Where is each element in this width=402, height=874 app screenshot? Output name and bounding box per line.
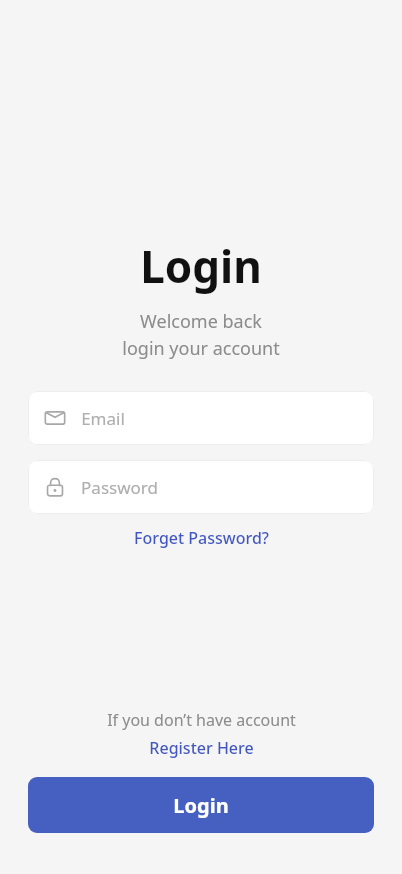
staticText: Login bbox=[140, 236, 262, 296]
staticText: Welcome back bbox=[140, 309, 262, 334]
button[interactable]: Password bbox=[28, 460, 374, 514]
button[interactable]: Login bbox=[28, 777, 374, 833]
staticText: Password bbox=[81, 476, 158, 499]
staticText: If you don’t have account bbox=[107, 709, 296, 731]
staticText: Email bbox=[81, 407, 125, 430]
staticText: Forget Password? bbox=[134, 527, 269, 549]
staticText: Register Here bbox=[149, 737, 254, 759]
staticText: login your account bbox=[122, 336, 280, 361]
button[interactable]: Forget Password? bbox=[130, 524, 273, 552]
staticText: Login bbox=[173, 792, 229, 819]
button[interactable]: Email bbox=[28, 391, 374, 445]
button[interactable]: Register Here bbox=[145, 735, 258, 761]
